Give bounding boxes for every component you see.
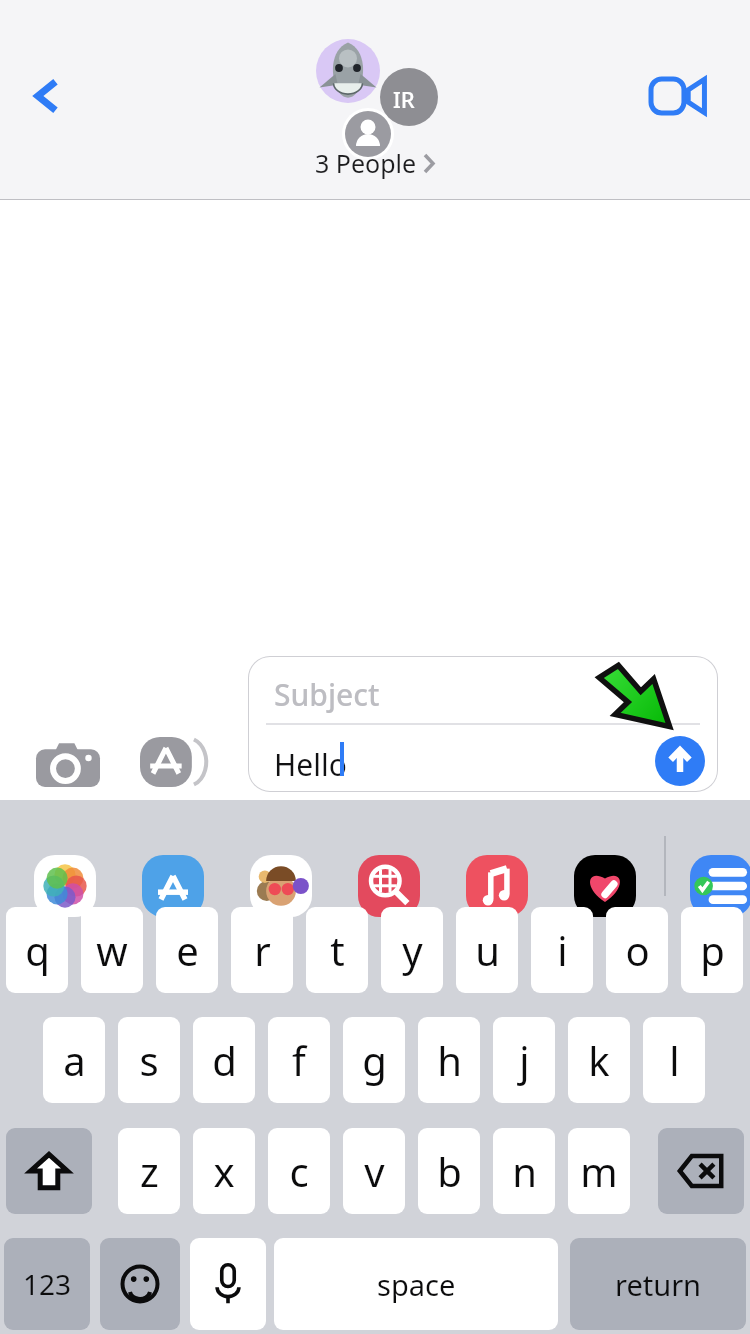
staticText: h [437, 1033, 462, 1087]
staticText: d [212, 1033, 237, 1087]
button[interactable]: return [570, 1238, 746, 1330]
staticText: r [254, 923, 271, 977]
button[interactable]: y [381, 907, 443, 993]
button[interactable]: l [643, 1017, 705, 1103]
button[interactable]: o [606, 907, 668, 993]
button[interactable]: App Store [142, 855, 204, 917]
button[interactable]: Shift [6, 1128, 92, 1214]
button[interactable]: space [274, 1238, 558, 1330]
button[interactable]: Emoji [100, 1238, 180, 1330]
button[interactable]: Subject [248, 656, 718, 792]
staticText: 3 People [315, 146, 417, 180]
staticText: e [176, 923, 199, 977]
staticText: i [557, 923, 568, 977]
staticText: return [615, 1265, 702, 1304]
staticText: u [475, 923, 500, 977]
button[interactable]: c [268, 1128, 330, 1214]
button[interactable]: h [418, 1017, 480, 1103]
staticText: g [362, 1033, 387, 1087]
button[interactable]: e [156, 907, 218, 993]
staticText: q [25, 923, 50, 977]
button[interactable]: Back [18, 66, 78, 126]
button[interactable]: g [343, 1017, 405, 1103]
button[interactable]: m [568, 1128, 630, 1214]
button[interactable]: z [118, 1128, 180, 1214]
staticText: c [289, 1144, 309, 1198]
button[interactable]: b [418, 1128, 480, 1214]
staticText: a [63, 1033, 86, 1087]
button[interactable]: Camera [24, 720, 112, 808]
button[interactable]: t [306, 907, 368, 993]
button[interactable]: q [6, 907, 68, 993]
button[interactable]: Memoji stickers [250, 855, 312, 917]
button[interactable]: 123 [4, 1238, 90, 1330]
staticText: m [580, 1144, 618, 1198]
button[interactable]: w [81, 907, 143, 993]
button[interactable]: x [193, 1128, 255, 1214]
button[interactable]: n [493, 1128, 555, 1214]
button[interactable]: Photos [34, 855, 96, 917]
button[interactable]: j [493, 1017, 555, 1103]
staticText: z [140, 1144, 159, 1198]
staticText: v [364, 1144, 385, 1198]
button[interactable]: Backspace [658, 1128, 744, 1214]
staticText: p [700, 923, 725, 977]
staticText: w [96, 923, 128, 977]
staticText: k [588, 1033, 610, 1087]
button[interactable]: a [43, 1017, 105, 1103]
button[interactable]: Dictation [190, 1238, 266, 1330]
staticText: Subject [274, 674, 380, 715]
staticText: x [213, 1144, 235, 1198]
staticText: t [330, 923, 345, 977]
button[interactable]: Send [655, 736, 705, 786]
staticText: j [519, 1033, 530, 1087]
button[interactable]: p [681, 907, 743, 993]
staticText: s [139, 1033, 159, 1087]
button[interactable]: s [118, 1017, 180, 1103]
staticText: b [437, 1144, 462, 1198]
button[interactable]: i [531, 907, 593, 993]
button[interactable]: v [343, 1128, 405, 1214]
button[interactable]: k [568, 1017, 630, 1103]
staticText: f [292, 1033, 306, 1087]
staticText: space [377, 1265, 456, 1304]
button[interactable]: Apps [132, 718, 220, 806]
button[interactable]: Music [466, 855, 528, 917]
staticText: o [625, 923, 650, 977]
button[interactable]: d [193, 1017, 255, 1103]
button[interactable]: FaceTime video call [634, 53, 720, 139]
staticText: l [669, 1033, 680, 1087]
button[interactable]: Images [358, 855, 420, 917]
staticText: 123 [23, 1265, 72, 1303]
staticText: IR [393, 84, 415, 114]
button[interactable]: Fitness [574, 855, 636, 917]
staticText: n [512, 1144, 537, 1198]
staticText: y [402, 923, 423, 977]
staticText: Hello [274, 744, 347, 785]
button[interactable]: IR [310, 34, 440, 180]
button[interactable]: f [268, 1017, 330, 1103]
button[interactable]: u [456, 907, 518, 993]
button[interactable]: Reminders [690, 855, 750, 917]
button[interactable]: r [231, 907, 293, 993]
